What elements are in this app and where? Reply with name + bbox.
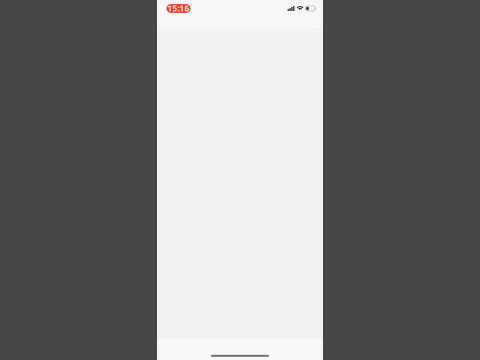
staticText: 15:16 <box>168 3 190 14</box>
button[interactable]: More <box>311 24 321 33</box>
button[interactable]: 15:16 <box>166 4 191 13</box>
